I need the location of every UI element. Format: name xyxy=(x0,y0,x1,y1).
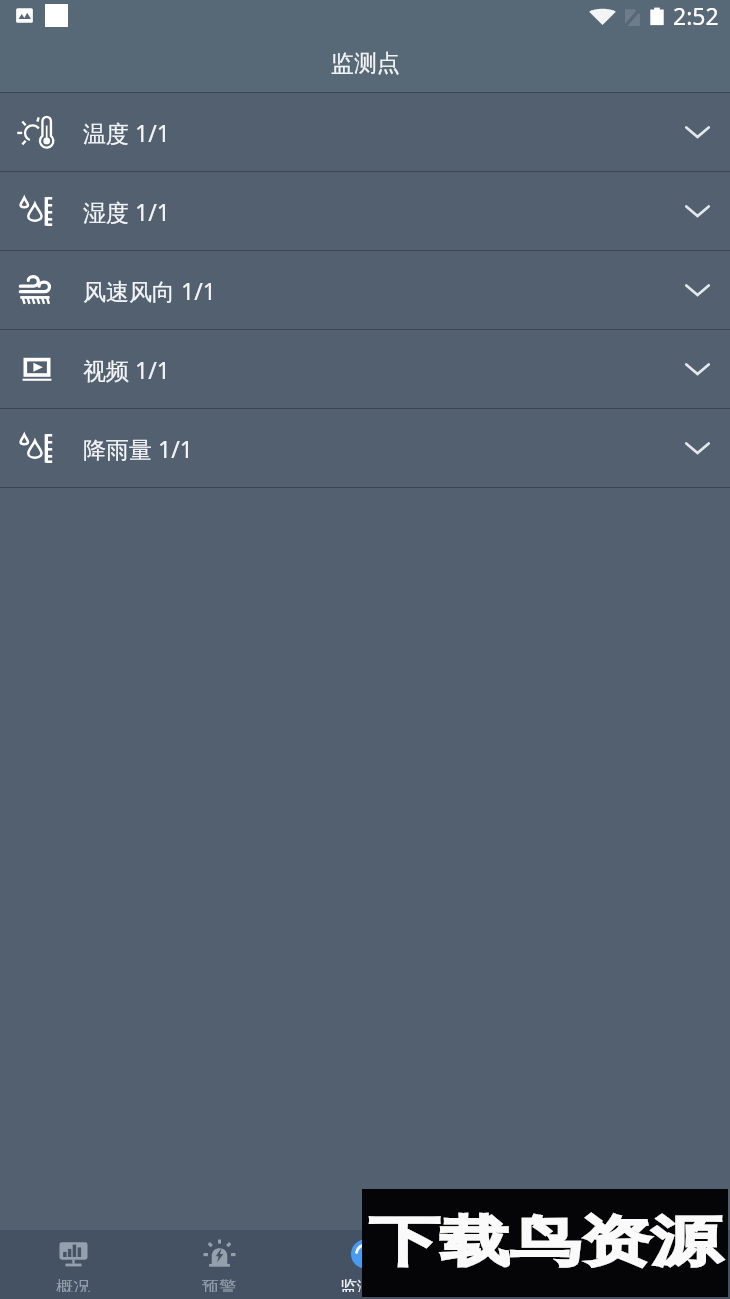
button[interactable]: Expand 视频 1/1 xyxy=(680,352,714,386)
button[interactable]: 降雨量 1/1 xyxy=(0,409,730,488)
button[interactable]: 温度 1/1 xyxy=(0,93,730,172)
button[interactable]: Expand 湿度 1/1 xyxy=(680,194,714,228)
button[interactable]: 视频 1/1 xyxy=(0,330,730,409)
button[interactable]: Expand 降雨量 1/1 xyxy=(680,431,714,465)
button[interactable]: 监测点 xyxy=(292,1230,438,1299)
staticText: 视频 1/1 xyxy=(83,354,170,385)
button[interactable]: 统计 xyxy=(438,1230,584,1299)
button[interactable]: Expand 温度 1/1 xyxy=(680,115,714,149)
staticText: 风速风向 1/1 xyxy=(83,275,216,306)
staticText: 2:52 xyxy=(673,0,719,31)
button[interactable]: 我的 xyxy=(584,1230,730,1299)
staticText: 下载鸟资源 xyxy=(369,1209,722,1276)
staticText: 预警 xyxy=(202,1277,236,1292)
staticText: 湿度 1/1 xyxy=(83,196,170,227)
button[interactable]: 湿度 1/1 xyxy=(0,172,730,251)
button[interactable]: 预警 xyxy=(146,1230,292,1299)
button[interactable]: 概况 xyxy=(0,1230,146,1299)
staticText: 概况 xyxy=(56,1277,90,1292)
button[interactable]: Expand 风速风向 1/1 xyxy=(680,273,714,307)
staticText: 监测点 xyxy=(331,49,400,78)
staticText: 监测点 xyxy=(340,1277,391,1292)
button[interactable]: 风速风向 1/1 xyxy=(0,251,730,330)
staticText: 温度 1/1 xyxy=(83,117,170,148)
staticText: 降雨量 1/1 xyxy=(83,433,193,464)
